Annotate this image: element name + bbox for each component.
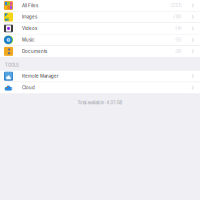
button[interactable]: All Files (0, 0, 200, 11)
staticText: Documents (22, 49, 47, 54)
staticText: (4) (175, 26, 182, 31)
staticText: (78) (173, 14, 182, 20)
staticText: Total available : 4.01 GB (77, 100, 122, 105)
button[interactable]: Cloud (0, 82, 200, 93)
button[interactable]: Documents (0, 46, 200, 57)
button[interactable]: Music (0, 34, 200, 46)
button[interactable]: Remote Manager (0, 71, 200, 82)
staticText: TOOLS (5, 62, 19, 68)
staticText: Cloud (22, 85, 35, 90)
staticText: (251) (170, 3, 182, 8)
button[interactable]: Images (0, 11, 200, 23)
button[interactable]: Videos (0, 23, 200, 34)
staticText: (5) (175, 37, 182, 42)
staticText: Remote Manager (22, 74, 59, 79)
staticText: Images (22, 14, 37, 20)
staticText: (8) (175, 49, 182, 54)
staticText: Videos (22, 26, 37, 31)
staticText: All Files (22, 3, 38, 8)
staticText: Music (22, 37, 35, 42)
